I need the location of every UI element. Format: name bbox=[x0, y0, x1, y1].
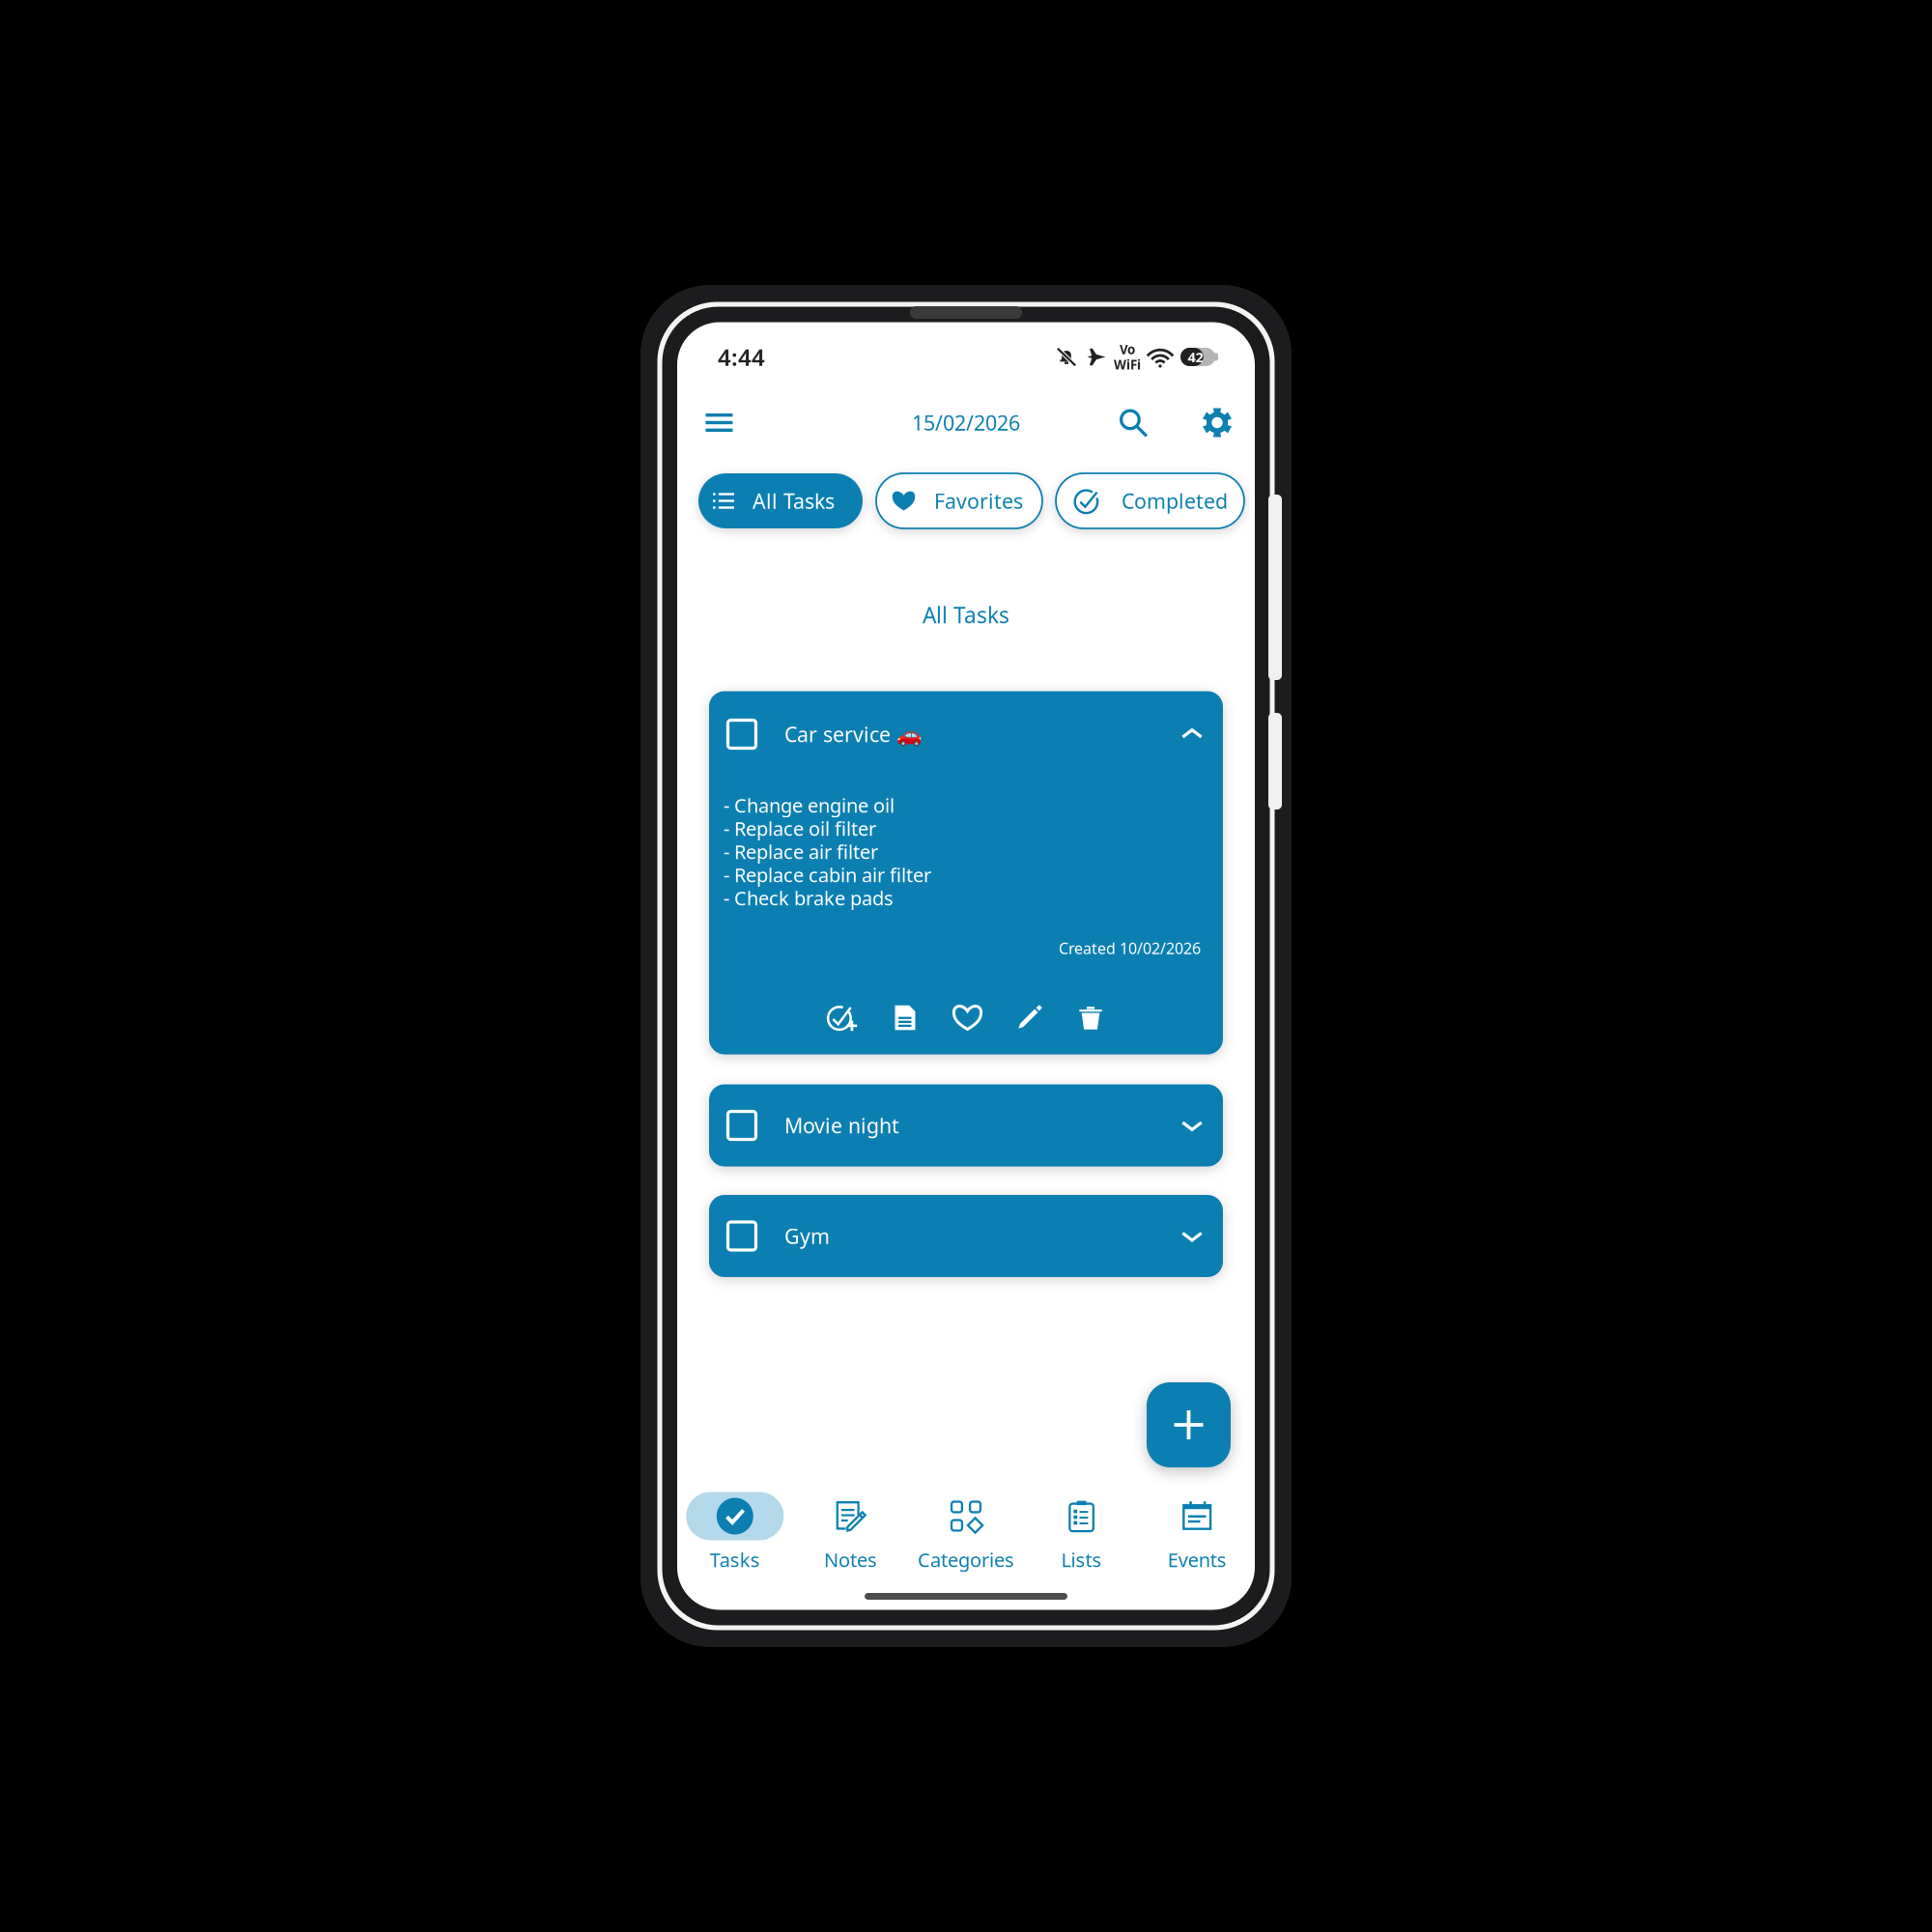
button[interactable]: Movie night bbox=[709, 1084, 1223, 1166]
button[interactable]: Add task bbox=[1147, 1382, 1231, 1467]
button[interactable]: Car service 🚗 bbox=[709, 691, 1223, 1054]
staticText: - Change engine oil bbox=[724, 792, 895, 818]
staticText: All Tasks bbox=[923, 600, 1009, 629]
staticText: Events bbox=[1168, 1547, 1227, 1572]
staticText: WiFi bbox=[1114, 356, 1141, 373]
staticText: - Replace cabin air filter bbox=[724, 862, 931, 888]
staticText: Vo bbox=[1120, 341, 1135, 358]
button[interactable]: Tasks bbox=[677, 1492, 793, 1581]
staticText: Lists bbox=[1061, 1547, 1102, 1572]
staticText: - Check brake pads bbox=[724, 885, 894, 911]
button[interactable]: Menu bbox=[692, 398, 746, 448]
staticText: Car service 🚗 bbox=[784, 720, 923, 748]
staticText: Created 10/02/2026 bbox=[1059, 938, 1201, 958]
staticText: Gym bbox=[784, 1222, 830, 1250]
button[interactable]: Settings bbox=[1190, 398, 1244, 448]
staticText: 4:44 bbox=[718, 342, 765, 372]
staticText: Categories bbox=[918, 1547, 1014, 1572]
staticText: All Tasks bbox=[753, 487, 835, 514]
staticText: - Replace oil filter bbox=[724, 815, 876, 841]
staticText: 42 bbox=[1188, 348, 1203, 366]
button[interactable]: Categories bbox=[908, 1492, 1024, 1581]
button[interactable]: Events bbox=[1139, 1492, 1255, 1581]
staticText: 15/02/2026 bbox=[912, 409, 1020, 436]
staticText: - Replace air filter bbox=[724, 839, 878, 864]
button[interactable]: Gym bbox=[709, 1195, 1223, 1277]
button[interactable]: All Tasks bbox=[698, 473, 863, 528]
button[interactable]: Favorites bbox=[876, 473, 1042, 528]
staticText: Tasks bbox=[710, 1547, 760, 1572]
staticText: Movie night bbox=[784, 1112, 899, 1139]
staticText: Completed bbox=[1122, 487, 1228, 514]
staticText: Favorites bbox=[934, 487, 1023, 514]
button[interactable]: Completed bbox=[1056, 473, 1244, 528]
button[interactable]: Search bbox=[1106, 398, 1160, 448]
button[interactable]: Lists bbox=[1024, 1492, 1139, 1581]
button[interactable]: Notes bbox=[793, 1492, 908, 1581]
staticText: Notes bbox=[824, 1547, 877, 1572]
